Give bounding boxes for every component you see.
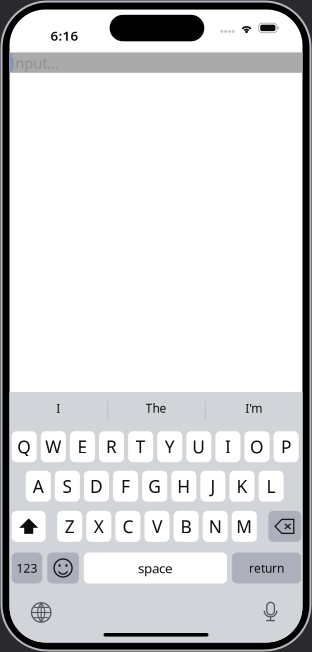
- staticText: C: [122, 515, 133, 538]
- staticText: I'm: [245, 400, 262, 416]
- button[interactable]: I'm: [205, 392, 302, 424]
- button[interactable]: W: [41, 431, 66, 462]
- button[interactable]: K: [229, 471, 254, 502]
- staticText: U: [192, 435, 205, 458]
- button[interactable]: return: [232, 552, 301, 583]
- button[interactable]: Delete: [268, 511, 301, 542]
- staticText: T: [136, 435, 146, 458]
- staticText: M: [236, 515, 252, 538]
- button[interactable]: Q: [12, 431, 37, 462]
- staticText: Q: [17, 435, 31, 458]
- staticText: S: [62, 475, 72, 498]
- button[interactable]: F: [113, 471, 138, 502]
- button[interactable]: E: [70, 431, 95, 462]
- button[interactable]: H: [171, 471, 196, 502]
- staticText: L: [267, 475, 276, 498]
- button[interactable]: P: [274, 431, 299, 462]
- button[interactable]: V: [144, 511, 169, 542]
- staticText: D: [90, 475, 103, 498]
- staticText: W: [45, 435, 61, 458]
- staticText: Input...: [10, 53, 59, 72]
- staticText: Z: [65, 515, 75, 538]
- staticText: B: [181, 515, 192, 538]
- staticText: space: [138, 559, 173, 577]
- button[interactable]: R: [99, 431, 124, 462]
- button[interactable]: B: [174, 511, 199, 542]
- staticText: N: [209, 515, 222, 538]
- staticText: A: [33, 475, 44, 498]
- button[interactable]: Next keyboard: [31, 603, 51, 622]
- staticText: K: [236, 475, 247, 498]
- staticText: O: [250, 435, 264, 458]
- staticText: X: [94, 515, 104, 538]
- staticText: E: [77, 435, 87, 458]
- staticText: return: [249, 560, 284, 576]
- button[interactable]: J: [200, 471, 225, 502]
- button[interactable]: T: [128, 431, 153, 462]
- button[interactable]: A: [26, 471, 51, 502]
- staticText: P: [281, 435, 291, 458]
- button[interactable]: I: [215, 431, 240, 462]
- button[interactable]: Z: [57, 511, 82, 542]
- staticText: J: [210, 475, 215, 498]
- staticText: I: [56, 400, 60, 416]
- button[interactable]: N: [203, 511, 228, 542]
- staticText: 6:16: [50, 27, 78, 44]
- button[interactable]: Y: [157, 431, 182, 462]
- button[interactable]: Dictation: [263, 602, 277, 622]
- button[interactable]: space: [84, 552, 227, 583]
- button[interactable]: U: [186, 431, 211, 462]
- button[interactable]: X: [86, 511, 111, 542]
- button[interactable]: L: [259, 471, 284, 502]
- staticText: I: [225, 435, 231, 458]
- staticText: R: [106, 435, 117, 458]
- button[interactable]: C: [115, 511, 140, 542]
- staticText: F: [121, 475, 130, 498]
- button[interactable]: Emoji keyboard: [47, 552, 79, 583]
- button[interactable]: The: [107, 392, 205, 424]
- staticText: G: [148, 475, 161, 498]
- button[interactable]: M: [232, 511, 257, 542]
- button[interactable]: S: [55, 471, 80, 502]
- staticText: Y: [165, 435, 175, 458]
- button[interactable]: G: [142, 471, 167, 502]
- button[interactable]: 123: [12, 552, 42, 583]
- button[interactable]: I: [9, 392, 107, 424]
- button[interactable]: D: [84, 471, 109, 502]
- staticText: V: [152, 515, 162, 538]
- staticText: The: [145, 400, 166, 416]
- staticText: H: [177, 475, 190, 498]
- button[interactable]: Shift: [12, 511, 46, 542]
- button[interactable]: O: [244, 431, 269, 462]
- staticText: 123: [16, 560, 37, 576]
